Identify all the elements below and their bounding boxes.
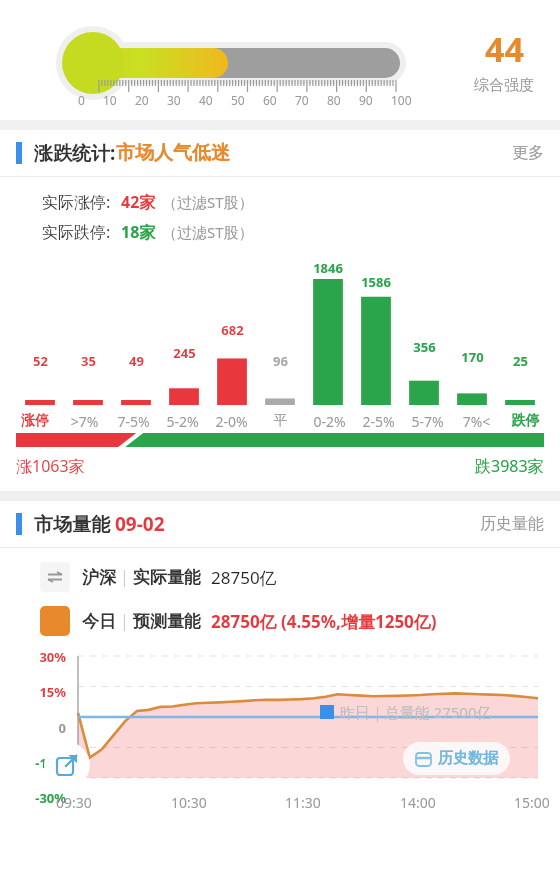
staticText: 09-02	[115, 511, 165, 537]
staticText: 44	[485, 26, 524, 72]
staticText: 0	[78, 92, 85, 108]
staticText: 5-7%	[403, 412, 452, 431]
staticText: 沪深	[82, 567, 116, 588]
staticText: 历史数据	[438, 749, 498, 768]
staticText: 40	[199, 92, 213, 108]
staticText: 预测量能	[133, 611, 201, 632]
staticText: 60	[263, 92, 277, 108]
staticText: ｜	[116, 611, 133, 632]
staticText: 90	[359, 92, 373, 108]
staticText: 28750亿 (4.55%,增量1250亿)	[211, 610, 437, 633]
staticText: 7-5%	[109, 412, 158, 431]
staticText: 更多	[512, 143, 544, 163]
staticText: 市场人气低迷	[116, 141, 230, 165]
staticText: 5-2%	[158, 412, 207, 431]
staticText: 历史量能	[480, 514, 544, 534]
staticText: 跌3983家	[475, 455, 544, 477]
staticText: 25	[513, 352, 528, 370]
staticText: 15:00	[514, 793, 550, 812]
staticText: 今日	[82, 611, 116, 632]
staticText: 15%	[0, 683, 66, 701]
staticText: 96	[273, 352, 288, 370]
staticText: 涨1063家	[16, 455, 85, 477]
button[interactable]: 更多	[512, 143, 544, 163]
staticText: 实际涨停:	[42, 191, 111, 213]
staticText: 2-0%	[207, 412, 256, 431]
staticText: 30%	[0, 648, 66, 666]
staticText: 跌停	[501, 412, 550, 430]
button[interactable]: 历史量能	[480, 514, 544, 534]
button[interactable]: 历史数据	[403, 742, 510, 775]
staticText: 1586	[361, 273, 391, 291]
staticText: 50	[231, 92, 245, 108]
staticText: 52	[33, 352, 48, 370]
staticText: 10:30	[171, 793, 207, 812]
staticText: 09:30	[56, 793, 92, 812]
staticText: 245	[173, 344, 196, 362]
staticText: 昨日｜总量能 27500亿	[340, 702, 492, 722]
button[interactable]: Share	[44, 742, 90, 788]
staticText: 实际跌停:	[42, 221, 111, 243]
staticText: 涨停	[10, 412, 60, 430]
staticText: -15%	[0, 754, 66, 772]
staticText: 356	[413, 338, 436, 356]
staticText: 35	[81, 352, 96, 370]
staticText: -30%	[0, 789, 66, 807]
staticText: 7%<	[452, 412, 501, 431]
staticText: 10	[103, 92, 117, 108]
staticText: 综合强度	[474, 76, 534, 95]
staticText: （过滤ST股）	[162, 222, 254, 242]
staticText: 11:30	[285, 793, 321, 812]
staticText: 20	[135, 92, 149, 108]
staticText: 18家	[121, 221, 156, 243]
staticText: （过滤ST股）	[162, 192, 254, 212]
staticText: 市场量能	[34, 511, 115, 537]
staticText: 0-2%	[305, 412, 354, 431]
staticText: 49	[129, 352, 144, 370]
staticText: 0	[0, 719, 66, 737]
staticText: 682	[221, 321, 244, 339]
staticText: 80	[327, 92, 341, 108]
staticText: 70	[295, 92, 309, 108]
staticText: 平	[256, 412, 305, 430]
staticText: ｜	[116, 567, 133, 588]
staticText: 100	[391, 92, 412, 108]
staticText: 28750亿	[211, 566, 277, 589]
staticText: 涨跌统计:	[34, 140, 116, 166]
staticText: 14:00	[400, 793, 436, 812]
staticText: >7%	[60, 412, 109, 431]
staticText: 1846	[313, 259, 343, 277]
staticText: 30	[167, 92, 181, 108]
staticText: 42家	[121, 191, 156, 213]
staticText: 170	[461, 348, 484, 366]
staticText: 2-5%	[354, 412, 403, 431]
staticText: 实际量能	[133, 567, 201, 588]
